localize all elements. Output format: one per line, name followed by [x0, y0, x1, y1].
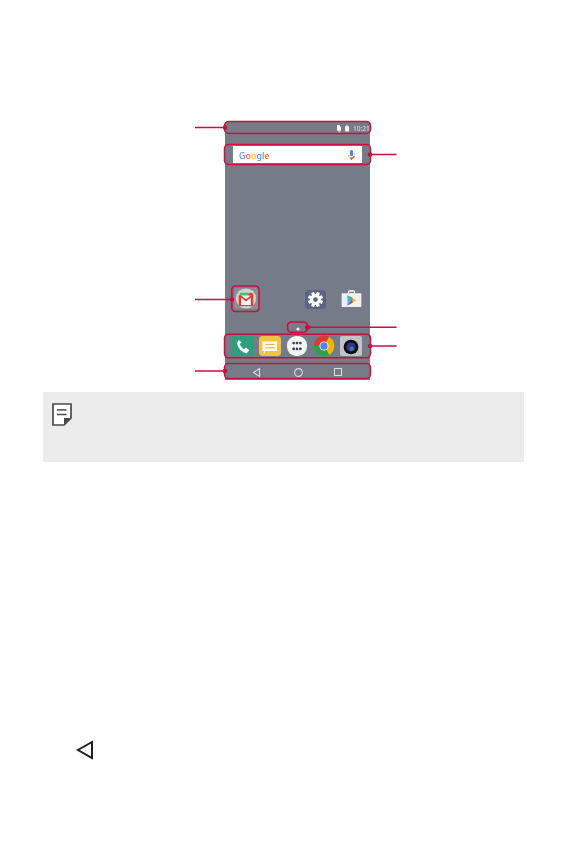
button[interactable]: Back [70, 734, 100, 766]
button[interactable]: Chrome [313, 336, 335, 356]
button[interactable]: Messages [259, 336, 281, 356]
button[interactable]: Back [246, 362, 266, 382]
button[interactable]: Camera [340, 336, 362, 356]
button[interactable]: Google [233, 146, 362, 163]
button[interactable]: Play Store [341, 290, 362, 308]
button[interactable]: Settings [305, 290, 326, 309]
button[interactable]: Recents [328, 362, 348, 382]
button[interactable]: All apps [286, 336, 308, 356]
staticText: Google [239, 149, 270, 161]
button[interactable]: Home [288, 362, 308, 382]
button[interactable]: Phone [232, 336, 254, 356]
staticText: 10:21 [353, 124, 370, 133]
button[interactable]: Gmail [234, 288, 258, 309]
